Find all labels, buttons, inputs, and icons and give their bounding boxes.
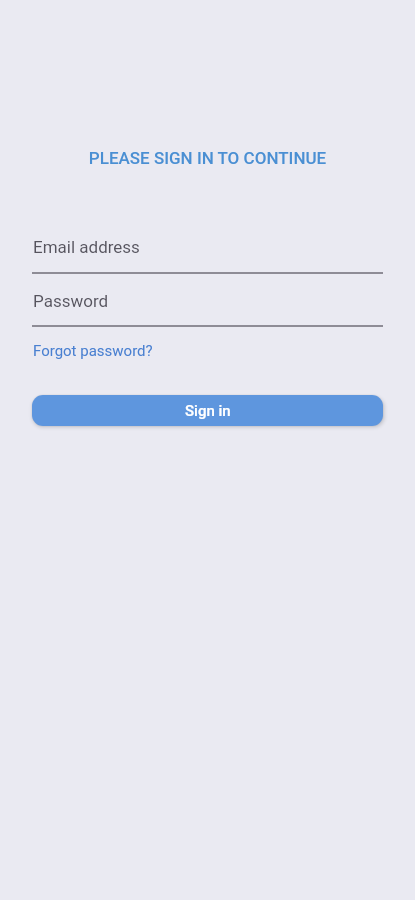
button[interactable]: Forgot password?	[33, 342, 153, 360]
staticText: Password	[33, 291, 109, 311]
staticText: Sign in	[185, 402, 231, 420]
staticText: Email address	[33, 237, 140, 257]
staticText: Forgot password?	[33, 342, 153, 360]
button[interactable]: Email address	[32, 232, 383, 274]
staticText: PLEASE SIGN IN TO CONTINUE	[0, 148, 415, 168]
button[interactable]: Sign in	[32, 395, 383, 426]
button[interactable]: Password	[32, 286, 383, 327]
